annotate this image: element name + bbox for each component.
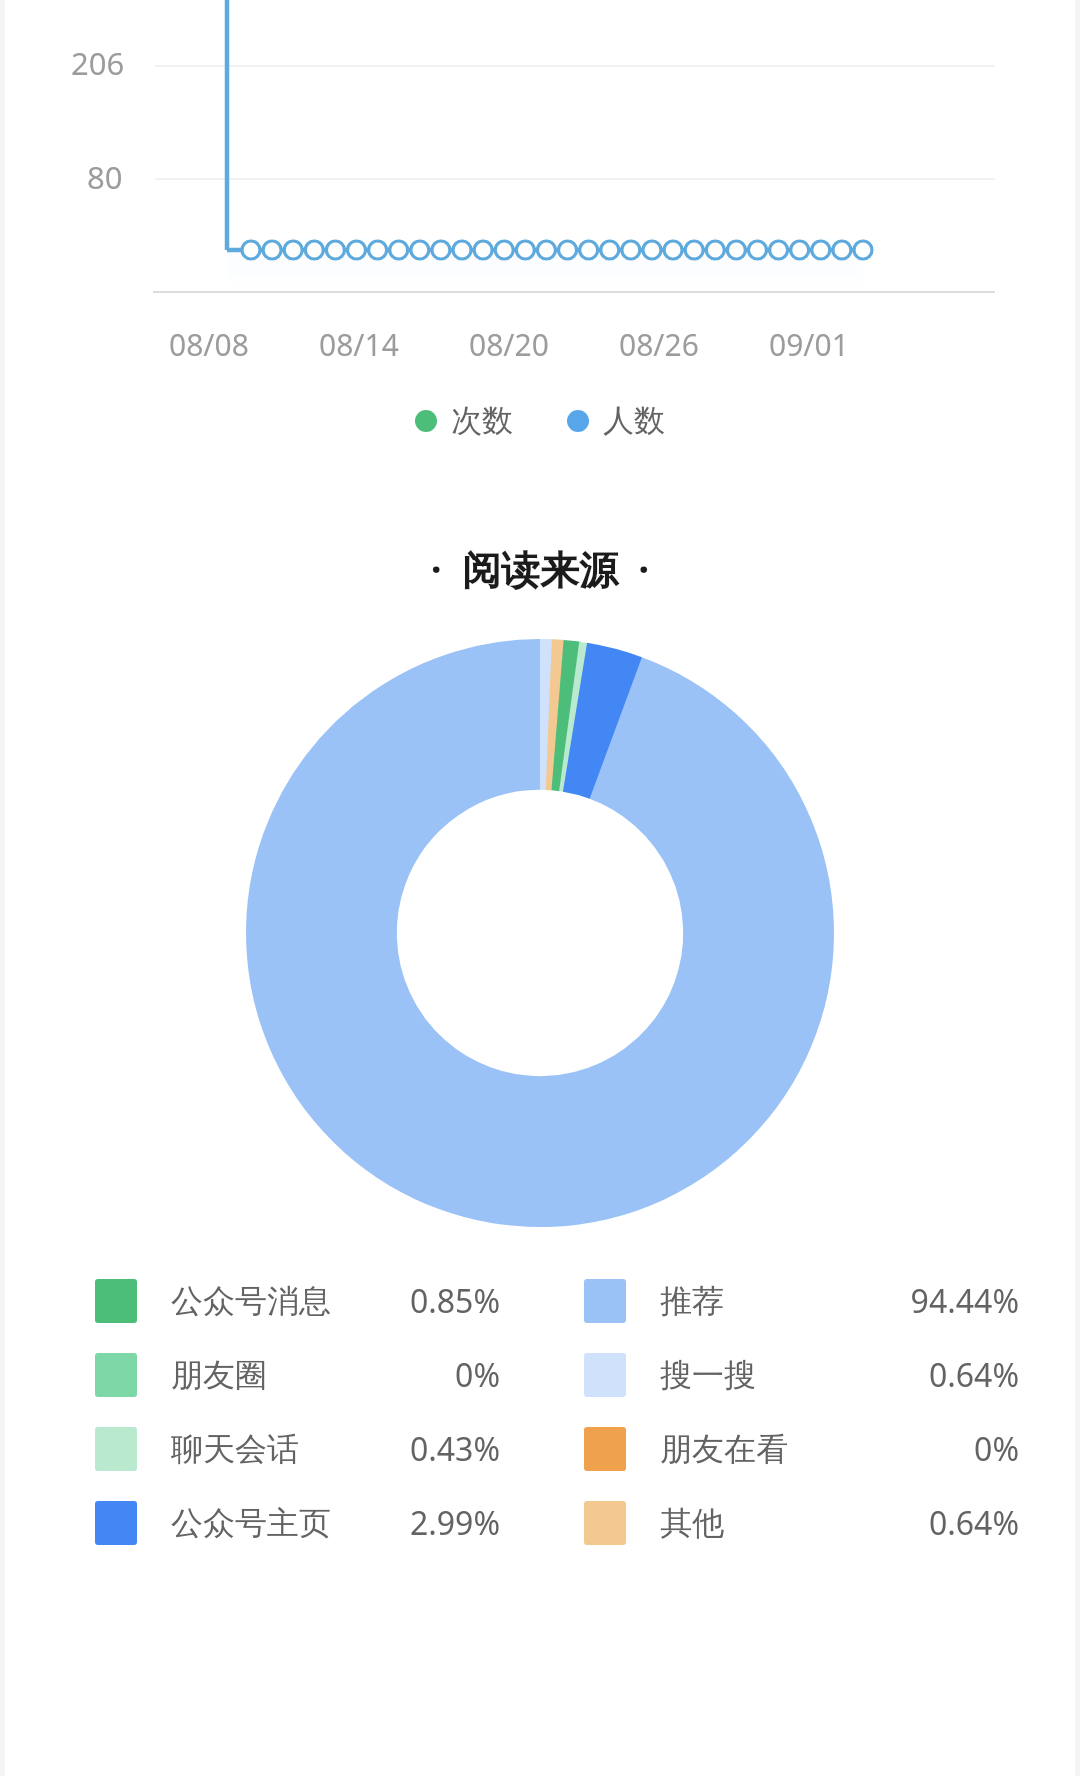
staticText: 0.64% <box>724 1501 1019 1545</box>
button[interactable]: 搜一搜 <box>584 1353 1019 1397</box>
staticText: 2.99% <box>331 1501 500 1545</box>
staticText: 朋友在看 <box>660 1429 788 1469</box>
staticText: 08/20 <box>469 324 549 365</box>
button[interactable]: 聊天会话 <box>95 1427 500 1471</box>
button[interactable]: 人数 <box>561 395 671 446</box>
button[interactable]: 公众号主页 <box>95 1501 500 1545</box>
staticText: 0.64% <box>756 1353 1019 1397</box>
button[interactable]: 朋友圈 <box>95 1353 500 1397</box>
staticText: 其他 <box>660 1503 724 1543</box>
staticText: 09/01 <box>769 324 849 365</box>
staticText: 08/26 <box>619 324 699 365</box>
staticText: · 阅读来源 · <box>5 542 1075 595</box>
button[interactable]: 次数 <box>409 395 519 446</box>
staticText: 推荐 <box>660 1281 724 1321</box>
staticText: 朋友圈 <box>171 1355 267 1395</box>
button[interactable]: 其他 <box>584 1501 1019 1545</box>
button[interactable]: 朋友在看 <box>584 1427 1019 1471</box>
button[interactable]: 公众号消息 <box>95 1279 500 1323</box>
staticText: 0.43% <box>299 1427 500 1471</box>
staticText: 0% <box>267 1353 500 1397</box>
staticText: 08/08 <box>169 324 249 365</box>
staticText: 08/14 <box>319 324 399 365</box>
staticText: 94.44% <box>724 1279 1019 1323</box>
staticText: 人数 <box>603 401 665 440</box>
staticText: 公众号消息 <box>171 1281 331 1321</box>
staticText: 0% <box>788 1427 1019 1471</box>
button[interactable]: 推荐 <box>584 1279 1019 1323</box>
staticText: 206 <box>71 42 125 84</box>
staticText: 公众号主页 <box>171 1503 331 1543</box>
staticText: 80 <box>87 156 123 198</box>
staticText: 搜一搜 <box>660 1355 756 1395</box>
staticText: 聊天会话 <box>171 1429 299 1469</box>
staticText: 0.85% <box>331 1279 500 1323</box>
staticText: 次数 <box>451 401 513 440</box>
